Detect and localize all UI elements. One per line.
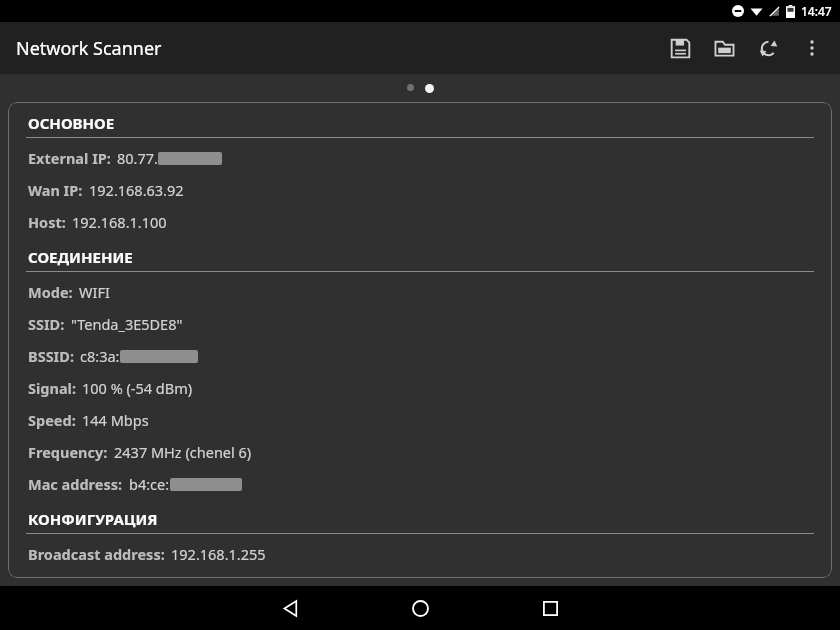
button[interactable]: Recent apps [513,586,587,630]
staticText: 192.168.1.100 [72,212,167,232]
button[interactable]: Broadcast address: [20,538,820,570]
staticText: 192.168.63.92 [89,180,184,200]
staticText: c8:3a: [80,346,120,366]
button[interactable]: Back [253,586,327,630]
staticText: Mac address: [28,474,123,494]
staticText: СОЕДИНЕНИЕ [28,247,133,267]
staticText: Mode: [28,282,73,302]
staticText: 192.168.1.255 [171,544,266,564]
staticText: Network Scanner [16,36,162,61]
staticText: b4:ce: [129,474,170,494]
staticText: WIFI [79,282,110,302]
button[interactable]: Signal: [20,372,820,404]
button[interactable]: Speed: [20,404,820,436]
button[interactable]: More options [790,26,834,70]
staticText: SSID: [28,314,65,334]
staticText: 100 % (-54 dBm) [82,378,193,398]
button[interactable]: BSSID: [20,340,820,372]
button[interactable]: ОСНОВНОЕ [20,102,820,578]
button[interactable]: Save [658,26,702,70]
staticText: ОСНОВНОЕ [28,113,115,133]
button[interactable]: Frequency: [20,436,820,468]
staticText: Speed: [28,410,76,430]
staticText: Frequency: [28,442,108,462]
staticText: Signal: [28,378,76,398]
staticText: Wan IP: [28,180,83,200]
button[interactable]: Host: [20,206,820,238]
button[interactable]: Mac address: [20,468,820,500]
staticText: External IP: [28,148,111,168]
staticText: КОНФИГУРАЦИЯ [28,509,158,529]
staticText: 14:47 [801,3,832,19]
staticText: "Tenda_3E5DE8" [71,314,183,334]
staticText: 80.77. [117,148,158,168]
staticText: 144 Mbps [82,410,149,430]
staticText: Host: [28,212,66,232]
staticText: 2437 MHz (chenel 6) [114,442,252,462]
button[interactable]: SSID: [20,308,820,340]
button[interactable]: External IP: [20,142,820,174]
button[interactable]: Open folder [702,26,746,70]
staticText: Broadcast address: [28,544,165,564]
button[interactable]: Refresh [746,26,790,70]
button[interactable]: Home [383,586,457,630]
staticText: BSSID: [28,346,74,366]
button[interactable]: Wan IP: [20,174,820,206]
button[interactable]: Mode: [20,276,820,308]
